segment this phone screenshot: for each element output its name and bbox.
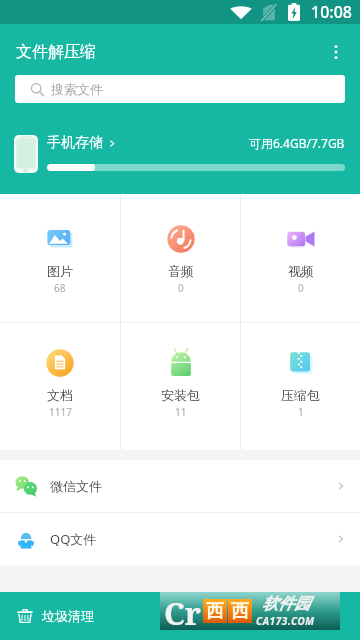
staticText: 图片 <box>47 263 73 279</box>
button[interactable]: 垃圾清理 <box>0 592 360 640</box>
staticText: 11 <box>175 405 187 419</box>
button[interactable]: 压缩包 <box>241 323 360 450</box>
staticText: 文档 <box>47 387 73 403</box>
staticText: 搜索文件 <box>51 81 103 97</box>
button[interactable]: 手机存储 <box>0 128 360 180</box>
button[interactable]: 音频 <box>121 194 240 322</box>
staticText: 手机存储 <box>47 134 103 152</box>
staticText: 压缩包 <box>281 387 320 403</box>
button[interactable]: 搜索文件 <box>15 75 345 103</box>
staticText: 微信文件 <box>50 478 102 494</box>
button[interactable]: 文档 <box>0 323 120 450</box>
staticText: 西 <box>206 600 224 623</box>
staticText: 西 <box>231 600 249 623</box>
staticText: 0 <box>298 281 304 295</box>
staticText: Cr <box>164 592 201 627</box>
staticText: 可用6.4GB/7.7GB <box>249 135 345 151</box>
staticText: 1117 <box>49 405 72 419</box>
button[interactable]: 图片 <box>0 194 120 322</box>
staticText: 软件园 <box>262 594 310 614</box>
button[interactable]: More options <box>316 32 356 72</box>
staticText: 音频 <box>168 263 194 279</box>
button[interactable]: 微信文件 <box>0 460 360 512</box>
staticText: 0 <box>178 281 184 295</box>
staticText: 10:08 <box>311 1 352 23</box>
button[interactable]: 安装包 <box>121 323 240 450</box>
staticText: 垃圾清理 <box>42 608 94 624</box>
staticText: 视频 <box>288 263 314 279</box>
button[interactable]: QQ文件 <box>0 513 360 565</box>
staticText: 文件解压缩 <box>16 42 96 62</box>
staticText: QQ文件 <box>50 530 97 548</box>
button[interactable]: 视频 <box>241 194 360 322</box>
staticText: 安装包 <box>161 387 200 403</box>
staticText: 1 <box>298 405 304 419</box>
staticText: CA173.COM <box>256 614 315 628</box>
staticText: 68 <box>54 281 66 295</box>
